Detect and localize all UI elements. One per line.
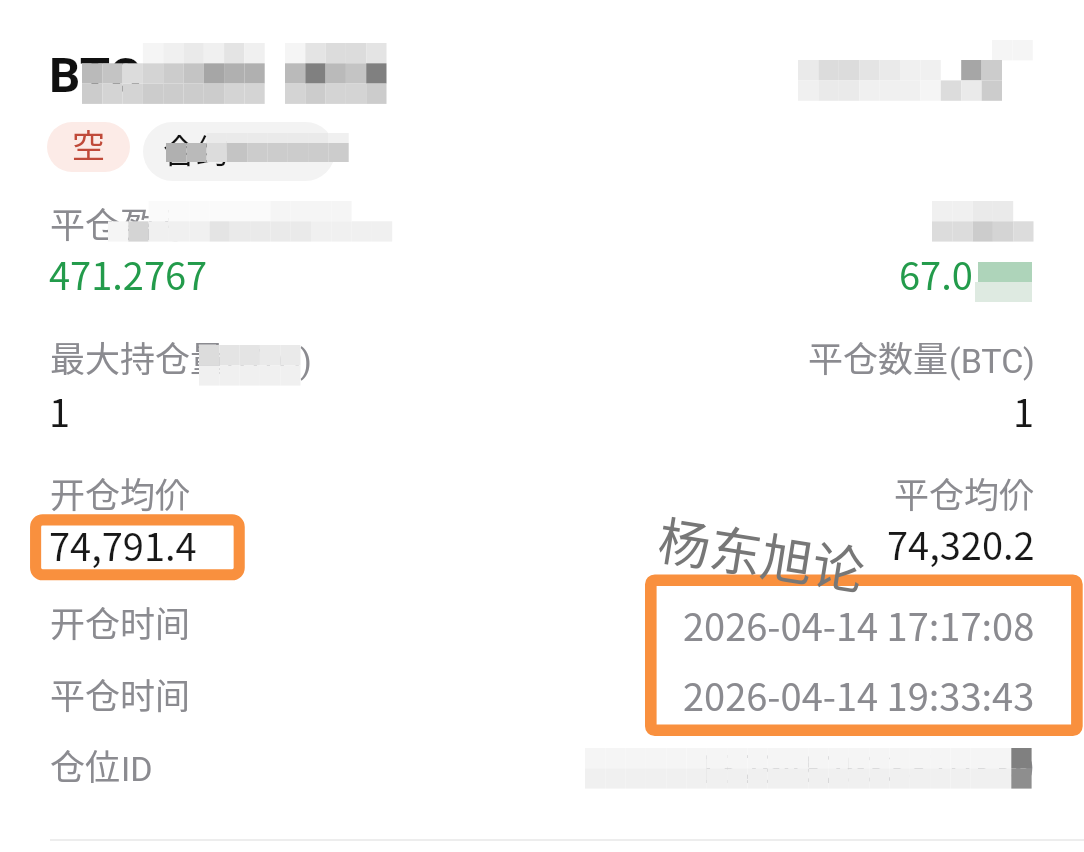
staticText: 仓位 [50, 739, 121, 790]
button[interactable]: 空 [47, 122, 130, 172]
staticText: 1 [49, 383, 71, 438]
staticText: 2026-04-14 17:17:08 [683, 597, 1035, 652]
staticText: 2026-04-14 19:33:43 [683, 667, 1035, 722]
staticText: 471.2767 [49, 246, 208, 301]
staticText: 平仓时间 [50, 668, 191, 719]
staticText: 合约 [163, 125, 229, 173]
staticText: 74,791.4 [49, 517, 197, 572]
staticText: 74,320.2 [887, 516, 1035, 571]
staticText: 最大持仓量 [50, 331, 226, 382]
button[interactable]: 合约 [143, 122, 335, 181]
staticText: 空 [72, 122, 105, 168]
staticText: 67.0 [899, 246, 973, 301]
staticText: BTC [49, 47, 142, 104]
staticText: ID [121, 749, 153, 789]
staticText: 杨东旭论 [653, 499, 872, 606]
staticText: 平仓盈亏 [50, 197, 191, 248]
staticText: 开仓均价 [50, 467, 191, 518]
staticText: 1 [1013, 383, 1035, 438]
staticText: 平仓均价 [894, 467, 1035, 518]
staticText: 开仓时间 [50, 596, 191, 647]
staticText: 1329482933870339 [697, 739, 1035, 794]
staticText: 平仓数量 [808, 331, 949, 382]
staticText: (BTC) [949, 341, 1035, 381]
staticText: (BTC) [226, 341, 312, 381]
